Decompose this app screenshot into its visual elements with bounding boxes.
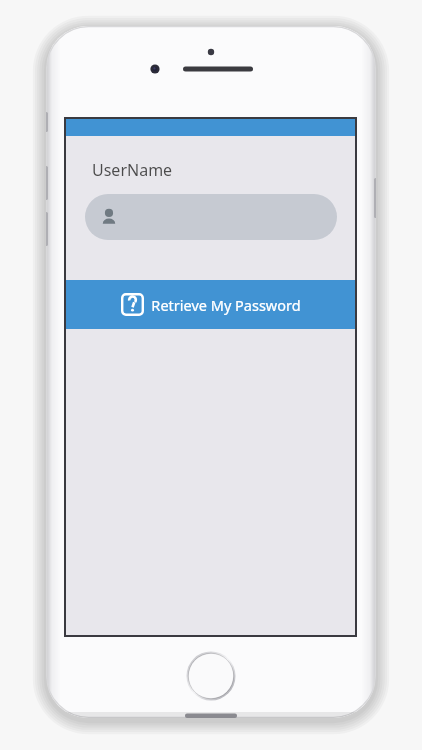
button[interactable]: User name bbox=[85, 194, 337, 240]
button[interactable]: Retrieve My Password bbox=[66, 280, 355, 329]
other: User name bbox=[99, 207, 119, 227]
other: Retrieve My Password bbox=[121, 293, 144, 316]
staticText: UserName bbox=[92, 159, 173, 181]
staticText: Retrieve My Password bbox=[151, 295, 301, 315]
